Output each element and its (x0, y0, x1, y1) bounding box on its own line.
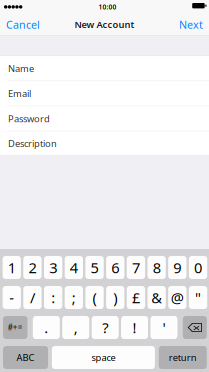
staticText: #+= (8, 322, 23, 333)
button[interactable]: ABC (3, 346, 48, 369)
button[interactable]: : (44, 286, 62, 309)
button[interactable]: @ (168, 286, 186, 309)
button[interactable]: " (189, 286, 207, 309)
button[interactable]: #+= (3, 316, 27, 339)
button[interactable]: ( (85, 286, 104, 309)
staticText: Name (8, 62, 34, 75)
staticText: ' (162, 318, 165, 337)
button[interactable]: 4 (65, 256, 83, 279)
button[interactable]: 2 (23, 256, 42, 279)
button[interactable]: Delete (183, 316, 207, 339)
staticText: . (44, 318, 48, 337)
staticText: 9 (173, 258, 181, 277)
staticText: Cancel (6, 17, 40, 32)
button[interactable]: ; (65, 286, 83, 309)
staticText: " (195, 288, 201, 307)
staticText: 10:00 (98, 3, 116, 11)
button[interactable]: ) (106, 286, 124, 309)
button[interactable]: 1 (3, 256, 21, 279)
button[interactable]: 3 (44, 256, 62, 279)
staticText: 0 (194, 258, 202, 277)
staticText: Next (179, 17, 203, 32)
staticText: 6 (111, 258, 119, 277)
staticText: , (74, 318, 78, 337)
button[interactable]: 5 (85, 256, 104, 279)
staticText: ? (102, 318, 108, 337)
staticText: - (9, 288, 14, 307)
staticText: ; (72, 288, 76, 307)
button[interactable]: ! (121, 316, 148, 339)
staticText: Email (8, 87, 31, 100)
button[interactable]: return (159, 346, 207, 369)
staticText: 5 (90, 258, 98, 277)
staticText: Password (8, 112, 50, 125)
button[interactable]: 0 (189, 256, 207, 279)
staticText: New Account (74, 18, 134, 31)
staticText: / (30, 288, 35, 307)
button[interactable]: / (23, 286, 42, 309)
button[interactable]: ? (92, 316, 119, 339)
staticText: 4 (70, 258, 78, 277)
staticText: 2 (28, 258, 36, 277)
button[interactable]: Cancel (1, 14, 45, 35)
staticText: ( (92, 288, 96, 307)
button[interactable]: 8 (147, 256, 166, 279)
button[interactable]: 9 (168, 256, 186, 279)
staticText: : (51, 288, 55, 307)
staticText: ABC (16, 351, 34, 364)
button[interactable]: Name (0, 56, 209, 81)
staticText: 8 (153, 258, 161, 277)
button[interactable]: , (62, 316, 89, 339)
button[interactable]: ' (150, 316, 177, 339)
button[interactable]: - (3, 286, 21, 309)
staticText: ! (133, 318, 137, 337)
button[interactable]: 6 (106, 256, 124, 279)
staticText: & (151, 288, 162, 307)
staticText: £ (132, 288, 140, 307)
staticText: 1 (8, 258, 16, 277)
button[interactable]: Email (0, 81, 209, 106)
button[interactable]: Description (0, 131, 209, 155)
button[interactable]: 7 (127, 256, 145, 279)
staticText: ) (113, 288, 117, 307)
staticText: space (91, 351, 115, 364)
staticText: Description (8, 137, 57, 150)
button[interactable]: . (33, 316, 60, 339)
button[interactable]: Next (174, 14, 208, 35)
button[interactable]: Password (0, 106, 209, 131)
button[interactable]: £ (127, 286, 145, 309)
staticText: return (169, 351, 197, 364)
button[interactable]: space (52, 346, 155, 369)
staticText: 3 (49, 258, 57, 277)
button[interactable]: & (147, 286, 166, 309)
staticText: @ (171, 288, 184, 307)
staticText: 7 (132, 258, 140, 277)
